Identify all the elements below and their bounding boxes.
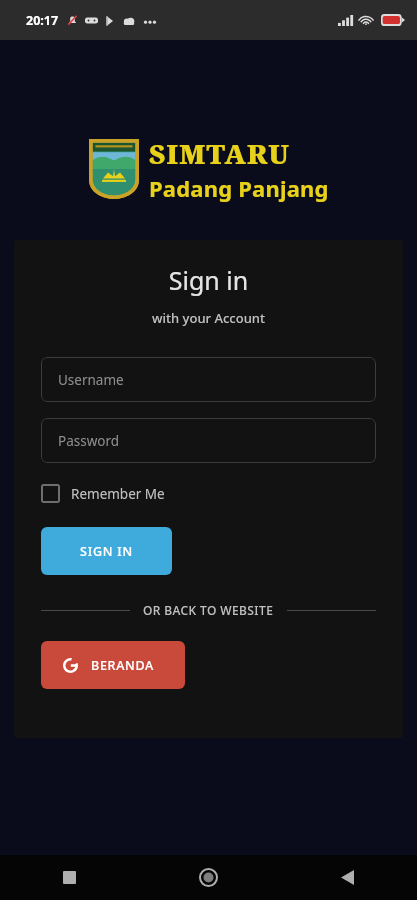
- staticText: OR BACK TO WEBSITE: [143, 602, 274, 618]
- button[interactable]: SIGN IN: [41, 527, 172, 575]
- staticText: Padang Panjang: [149, 173, 329, 203]
- staticText: Remember Me: [71, 485, 165, 503]
- staticText: BERANDA: [91, 657, 154, 674]
- button[interactable]: Recent apps: [0, 855, 139, 900]
- button[interactable]: Username: [41, 357, 376, 402]
- button[interactable]: BERANDA: [41, 641, 185, 689]
- button[interactable]: Remember Me: [41, 482, 165, 505]
- staticText: Username: [58, 371, 124, 389]
- button[interactable]: Password: [41, 418, 376, 463]
- staticText: with your Account: [14, 309, 403, 327]
- button[interactable]: Back: [278, 855, 417, 900]
- staticText: Sign in: [14, 263, 403, 297]
- staticText: SIMTARU: [149, 135, 291, 172]
- staticText: SIGN IN: [80, 543, 134, 560]
- button[interactable]: Home: [139, 855, 278, 900]
- staticText: 20:17: [26, 12, 59, 29]
- staticText: Password: [58, 432, 120, 450]
